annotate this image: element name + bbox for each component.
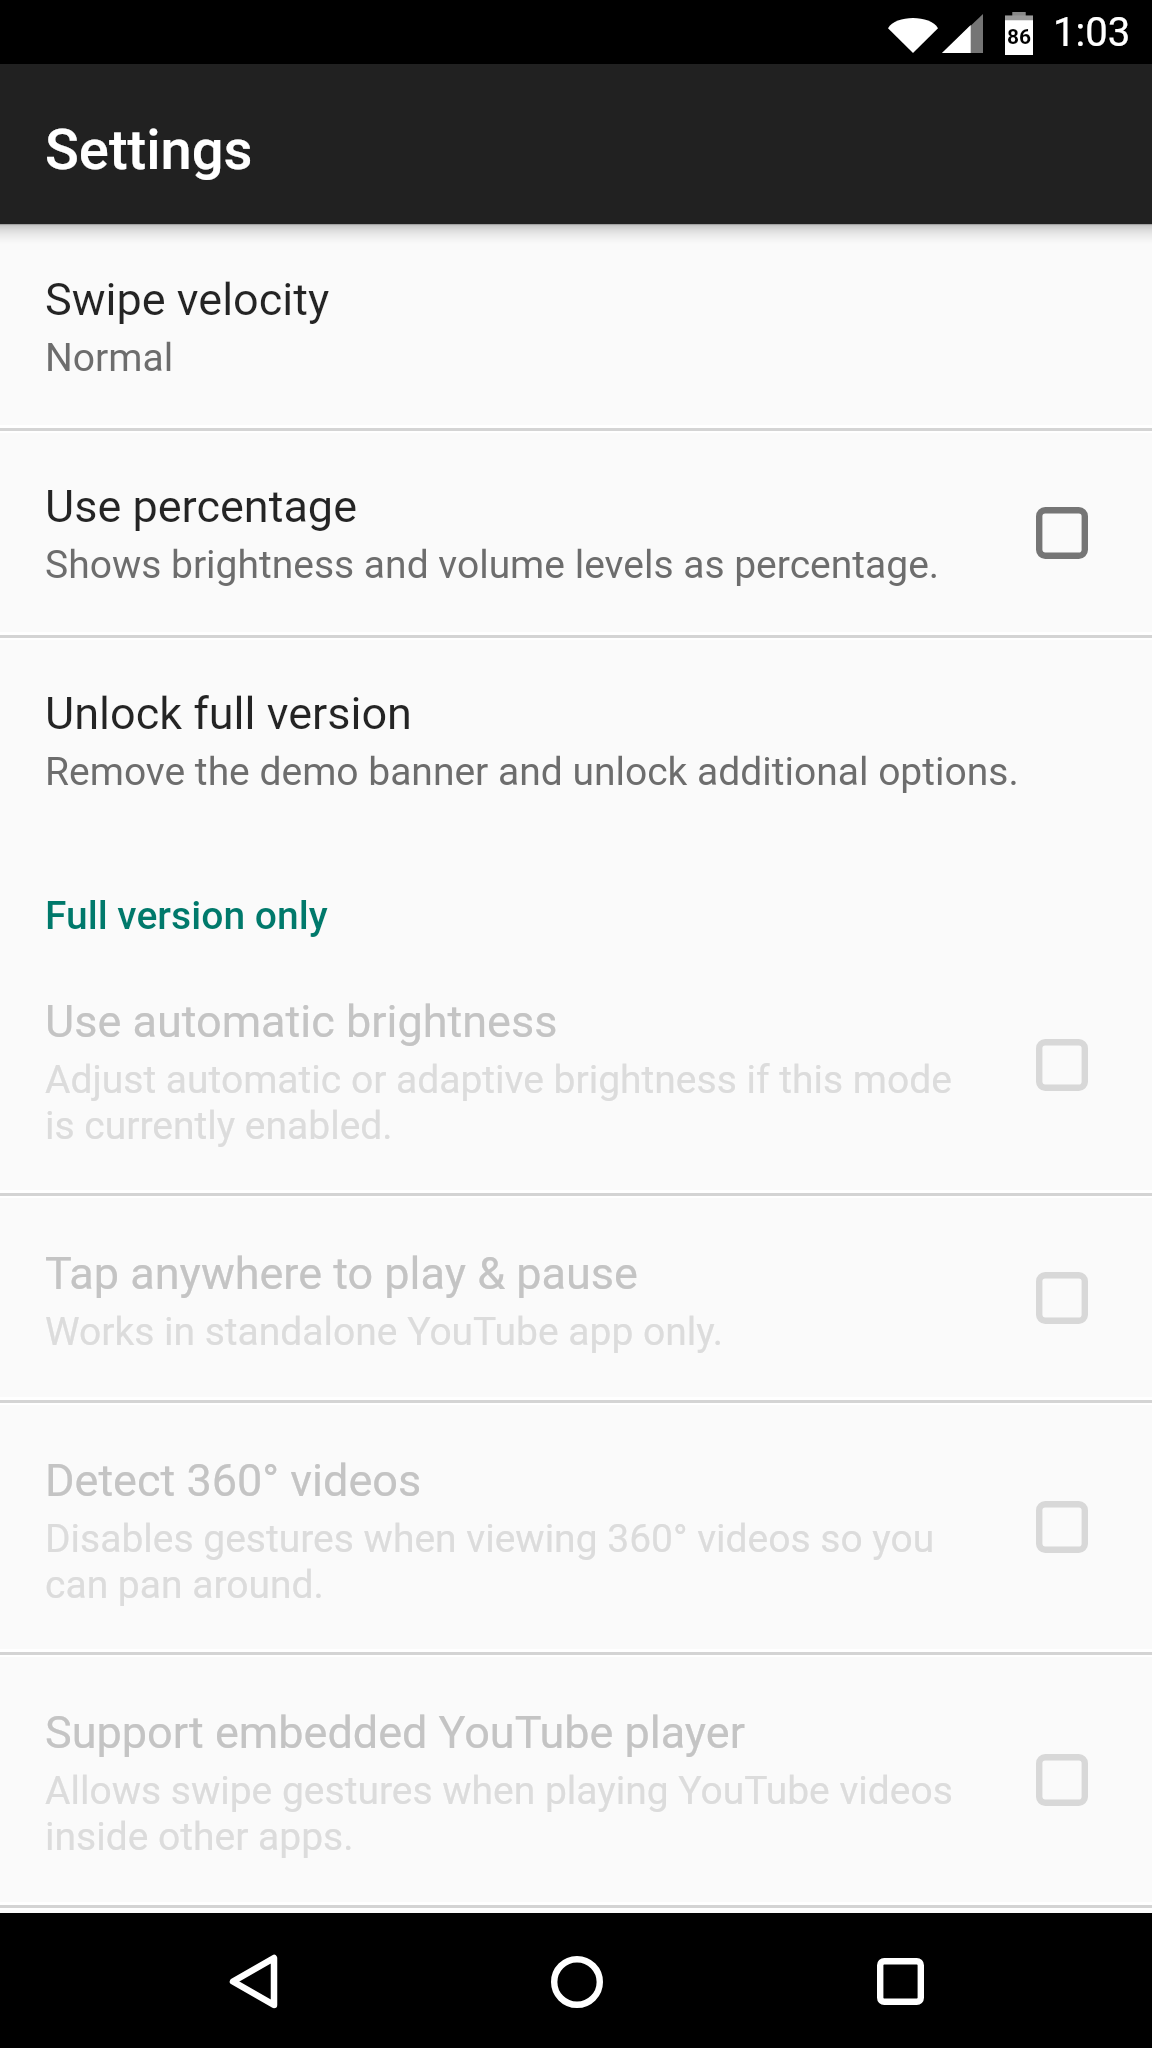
staticText: Detect 360° videos xyxy=(45,1453,422,1507)
button[interactable]: Detect 360° videos xyxy=(0,1405,1152,1649)
staticText: 1:03 xyxy=(1053,9,1131,56)
button[interactable]: Recents xyxy=(830,1913,970,2048)
staticText: Works in standalone YouTube app only. xyxy=(45,1309,723,1355)
staticText: Use automatic brightness xyxy=(45,994,558,1048)
button[interactable]: Home xyxy=(507,1913,647,2048)
button[interactable]: Unlock full version xyxy=(0,640,1152,826)
button[interactable]: Support embedded YouTube player xyxy=(0,1657,1152,1902)
staticText: Allows swipe gestures when playing YouTu… xyxy=(45,1768,975,1860)
staticText: Normal xyxy=(45,335,174,381)
staticText: Shows brightness and volume levels as pe… xyxy=(45,542,940,588)
staticText: Disables gestures when viewing 360° vide… xyxy=(45,1516,975,1608)
button[interactable]: Swipe velocity xyxy=(0,224,1152,425)
staticText: Swipe velocity xyxy=(45,272,330,326)
button[interactable]: Use percentage xyxy=(0,433,1152,632)
staticText: Unlock full version xyxy=(45,686,412,740)
button[interactable]: Use automatic brightness xyxy=(0,957,1152,1190)
staticText: Full version only xyxy=(45,893,328,939)
staticText: Tap anywhere to play & pause xyxy=(45,1246,638,1300)
staticText: 86 xyxy=(1007,25,1032,50)
staticText: Adjust automatic or adaptive brightness … xyxy=(45,1057,975,1149)
button[interactable]: Tap anywhere to play & pause xyxy=(0,1198,1152,1397)
staticText: Use percentage xyxy=(45,479,357,533)
staticText: Settings xyxy=(45,117,253,183)
staticText: Remove the demo banner and unlock additi… xyxy=(45,749,1019,795)
staticText: Support embedded YouTube player xyxy=(45,1705,745,1759)
button[interactable]: Back xyxy=(183,1913,323,2048)
